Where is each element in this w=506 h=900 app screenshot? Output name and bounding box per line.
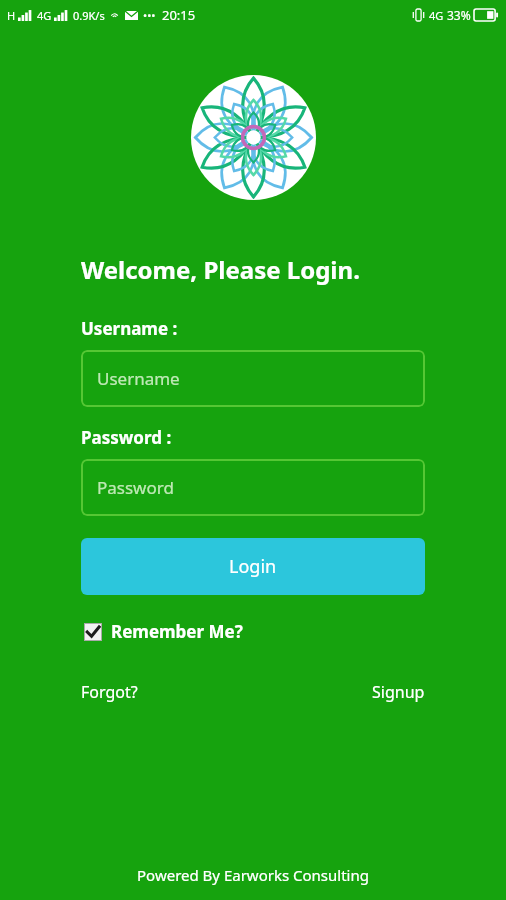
staticText: Login: [229, 554, 277, 579]
staticText: Welcome, Please Login.: [81, 253, 360, 286]
staticText: Remember Me?: [111, 620, 243, 643]
staticText: Password :: [81, 426, 172, 449]
staticText: Signup: [372, 681, 425, 703]
button[interactable]: Password: [81, 459, 425, 516]
button[interactable]: Remember Me?: [84, 620, 243, 643]
staticText: Username: [97, 367, 180, 390]
staticText: 4G: [429, 8, 444, 23]
staticText: 4G: [37, 8, 52, 23]
button[interactable]: Username: [81, 350, 425, 407]
button[interactable]: Forgot?: [81, 681, 138, 703]
staticText: 0.9K/s: [73, 8, 105, 23]
staticText: Forgot?: [81, 681, 138, 703]
staticText: Powered By Earworks Consulting: [0, 865, 506, 885]
button[interactable]: Login: [81, 538, 425, 595]
staticText: H: [7, 8, 16, 23]
staticText: •••: [143, 8, 156, 23]
staticText: Username :: [81, 317, 178, 340]
staticText: 33%: [447, 7, 471, 23]
staticText: Password: [97, 476, 174, 499]
button[interactable]: Signup: [372, 681, 425, 703]
staticText: 20:15: [162, 6, 196, 24]
